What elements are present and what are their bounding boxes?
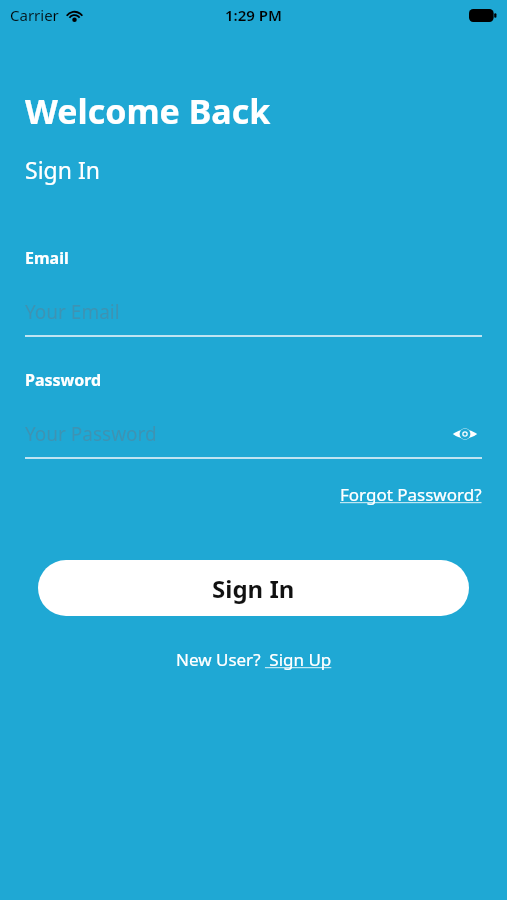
staticText: Sign In xyxy=(212,572,295,605)
staticText: Carrier xyxy=(10,5,59,25)
staticText: 1:29 PM xyxy=(225,5,282,25)
staticText: Welcome Back xyxy=(25,88,271,134)
button[interactable]: Forgot Password? xyxy=(340,479,482,510)
button[interactable]: Show password xyxy=(448,417,482,451)
staticText: Your Email xyxy=(25,299,120,325)
staticText: Your Password xyxy=(25,421,157,447)
button[interactable]: Sign In xyxy=(38,560,469,616)
button[interactable]: New User? Sign Up xyxy=(176,644,332,675)
staticText: Password xyxy=(25,369,102,391)
button[interactable]: Your Password xyxy=(25,417,482,451)
staticText: Email xyxy=(25,247,69,269)
staticText: Forgot Password? xyxy=(340,483,482,506)
staticText: New User? Sign Up xyxy=(176,648,332,671)
button[interactable]: Your Email xyxy=(25,295,482,329)
staticText: Sign In xyxy=(25,154,100,185)
